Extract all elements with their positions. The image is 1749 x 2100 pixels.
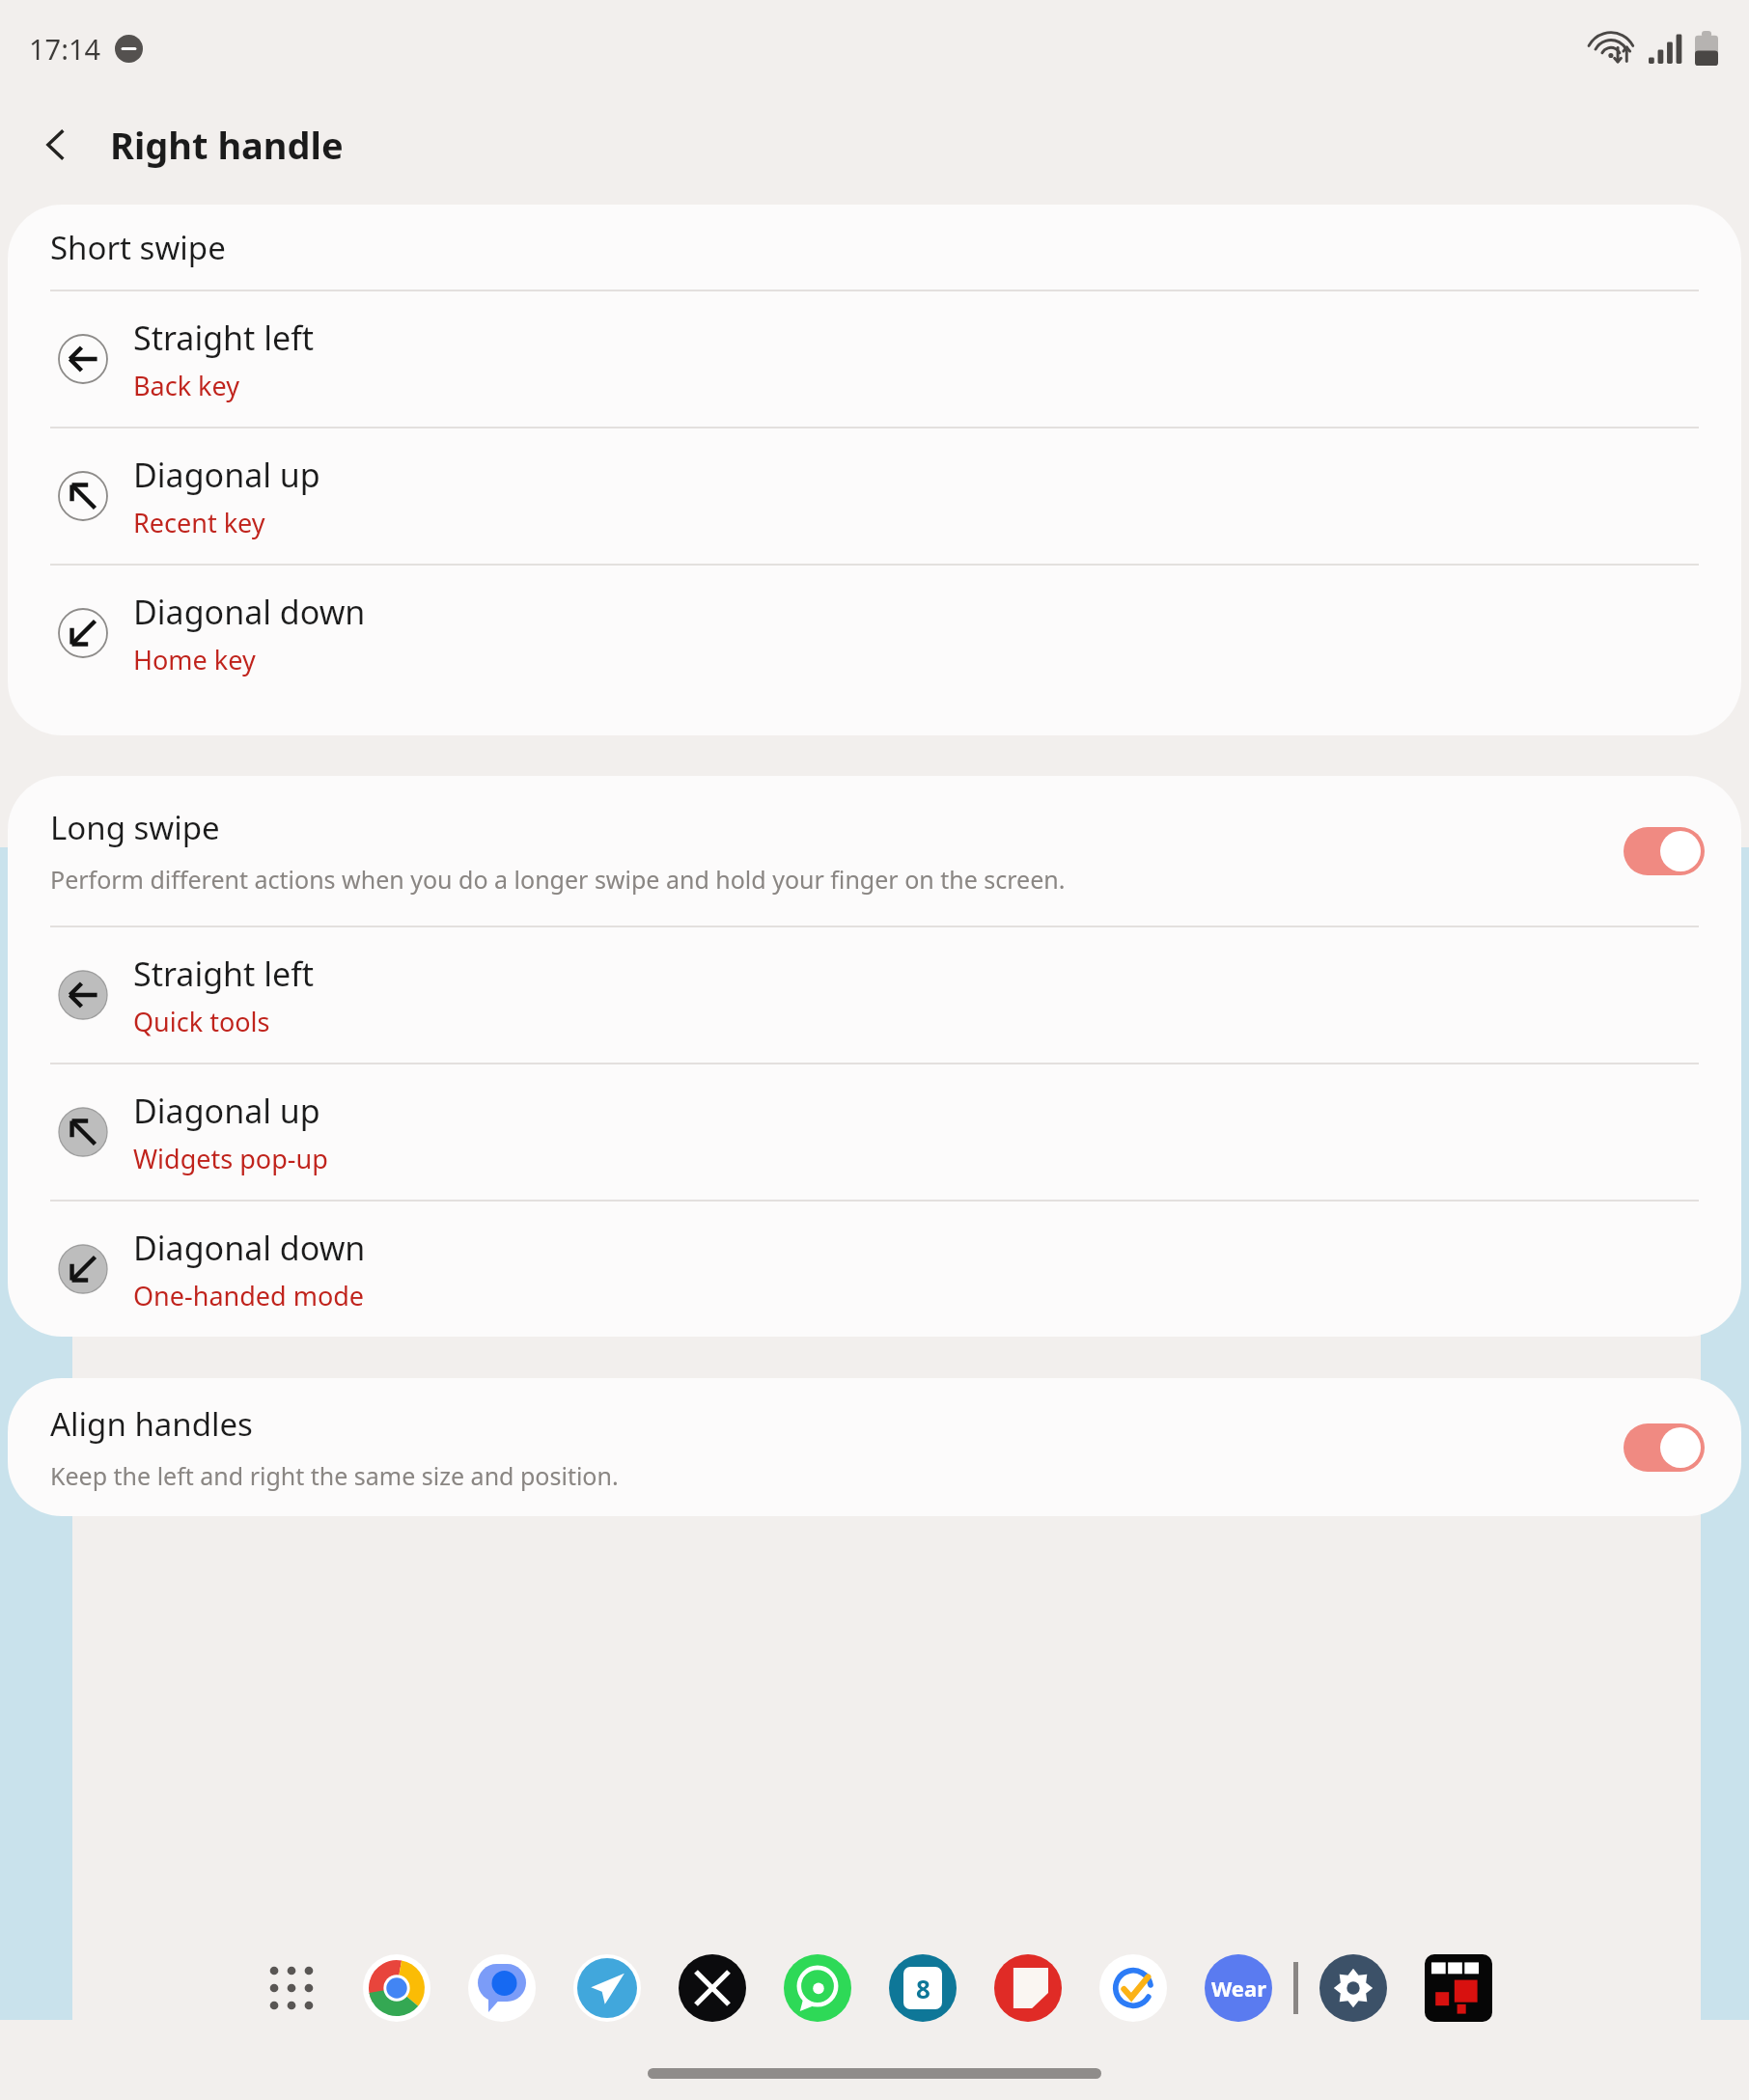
staticText: One-handed mode — [133, 1278, 365, 1313]
button[interactable]: Wear — [1199, 1948, 1278, 2028]
button[interactable]: Toggle on — [1624, 1423, 1705, 1472]
staticText: Recent key — [133, 505, 265, 540]
staticText: Diagonal down — [133, 1226, 366, 1270]
button[interactable]: WhatsApp — [778, 1948, 857, 2028]
button[interactable]: Settings — [1314, 1948, 1393, 2028]
staticText: Wear — [1211, 1974, 1266, 2003]
button[interactable]: Diagonal down — [8, 1202, 1741, 1337]
button[interactable]: Straight left — [8, 291, 1741, 427]
staticText: Home key — [133, 642, 256, 677]
button[interactable]: Toggle on — [1624, 827, 1705, 875]
button[interactable]: Chrome — [357, 1948, 436, 2028]
staticText: Align handles — [50, 1402, 253, 1446]
staticText: 8 — [916, 1972, 930, 2005]
staticText: Back key — [133, 368, 239, 403]
button[interactable]: Tasks — [1094, 1948, 1173, 2028]
staticText: Keep the left and right the same size an… — [50, 1459, 619, 1492]
button[interactable]: Diagonal up — [8, 428, 1741, 564]
button[interactable]: Calendar — [883, 1948, 962, 2028]
staticText: 17:14 — [29, 30, 101, 68]
button[interactable]: Messages — [462, 1948, 541, 2028]
staticText: Diagonal down — [133, 590, 366, 634]
staticText: Straight left — [133, 952, 315, 996]
staticText: Diagonal up — [133, 1089, 320, 1133]
button[interactable]: Telegram — [568, 1948, 647, 2028]
staticText: Perform different actions when you do a … — [50, 863, 1066, 896]
button[interactable]: Straight left — [8, 927, 1741, 1063]
button[interactable]: Align handles — [8, 1378, 1741, 1516]
button[interactable]: Long swipe — [8, 776, 1741, 926]
staticText: Right handle — [110, 120, 344, 170]
button[interactable]: Back — [21, 110, 91, 180]
button[interactable]: Reader — [988, 1948, 1068, 2028]
button[interactable]: X — [673, 1948, 752, 2028]
staticText: Straight left — [133, 316, 315, 360]
button[interactable]: BBC — [1419, 1948, 1498, 2028]
staticText: Short swipe — [50, 226, 226, 269]
button[interactable]: Diagonal down — [8, 566, 1741, 701]
staticText: Widgets pop-up — [133, 1141, 328, 1176]
button[interactable]: Diagonal up — [8, 1064, 1741, 1200]
button[interactable]: All apps — [252, 1948, 331, 2028]
staticText: Long swipe — [50, 806, 220, 849]
staticText: Quick tools — [133, 1004, 270, 1039]
staticText: Diagonal up — [133, 453, 320, 497]
